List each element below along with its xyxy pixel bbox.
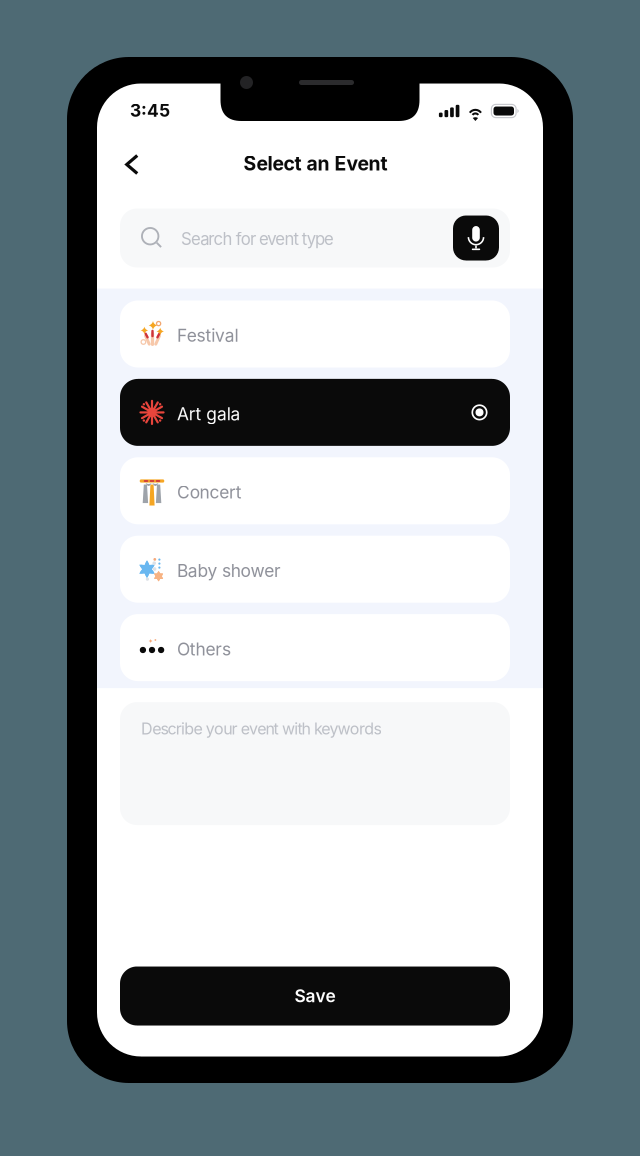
- button[interactable]: Back: [114, 146, 150, 182]
- staticText: Select an Event: [243, 152, 387, 175]
- staticText: Others: [177, 639, 231, 660]
- button[interactable]: Baby shower: [120, 536, 510, 603]
- button[interactable]: Others: [120, 614, 510, 681]
- staticText: Search for event type: [181, 229, 334, 249]
- button[interactable]: Concert: [120, 457, 510, 524]
- button[interactable]: Festival: [120, 300, 510, 367]
- staticText: Art gala: [177, 403, 241, 424]
- button[interactable]: Save: [120, 966, 510, 1025]
- staticText: Festival: [177, 325, 239, 346]
- staticText: Describe your event with keywords: [141, 719, 381, 738]
- button[interactable]: Art gala: [120, 379, 510, 446]
- staticText: Save: [294, 985, 335, 1006]
- staticText: 3:45: [130, 100, 170, 121]
- button[interactable]: Describe your event with keywords: [120, 702, 510, 825]
- button[interactable]: Voice search: [453, 215, 499, 260]
- staticText: Baby shower: [177, 560, 281, 581]
- staticText: Concert: [177, 482, 242, 503]
